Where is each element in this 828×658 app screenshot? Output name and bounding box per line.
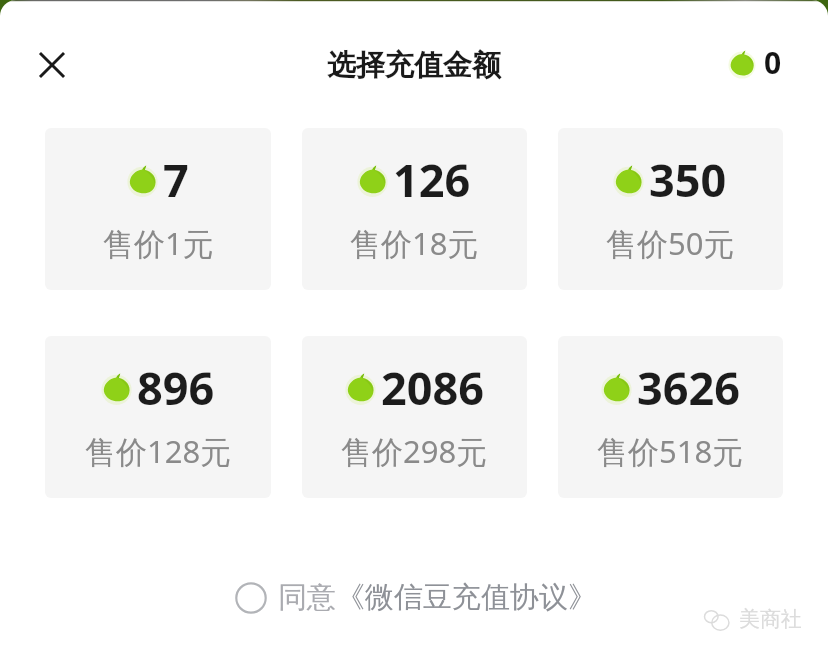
staticText: 126 bbox=[393, 149, 471, 210]
button[interactable]: 126 bbox=[302, 128, 527, 290]
staticText: 售价1元 bbox=[103, 222, 214, 264]
staticText: 售价518元 bbox=[597, 430, 744, 472]
staticText: 售价128元 bbox=[85, 430, 232, 472]
staticText: 0 bbox=[764, 42, 782, 83]
staticText: 7 bbox=[163, 149, 189, 210]
button[interactable]: 350 bbox=[558, 128, 783, 290]
staticText: 2086 bbox=[381, 357, 484, 418]
staticText: 选择充值金额 bbox=[327, 47, 501, 84]
button[interactable]: Close bbox=[25, 38, 79, 92]
staticText: 美商社 bbox=[739, 606, 802, 632]
button[interactable]: 同意 bbox=[235, 579, 597, 616]
staticText: 售价18元 bbox=[350, 222, 479, 264]
staticText: 售价298元 bbox=[341, 430, 488, 472]
button[interactable]: 896 bbox=[45, 336, 271, 498]
staticText: 《微信豆充值协议》 bbox=[336, 579, 597, 616]
button[interactable]: 7 bbox=[45, 128, 271, 290]
staticText: 896 bbox=[137, 357, 215, 418]
button[interactable]: 3626 bbox=[558, 336, 783, 498]
staticText: 同意 bbox=[278, 579, 336, 616]
staticText: 350 bbox=[649, 149, 727, 210]
staticText: 3626 bbox=[637, 357, 740, 418]
staticText: 售价50元 bbox=[606, 222, 735, 264]
button[interactable]: 2086 bbox=[302, 336, 527, 498]
button[interactable]: 0 bbox=[729, 42, 782, 83]
